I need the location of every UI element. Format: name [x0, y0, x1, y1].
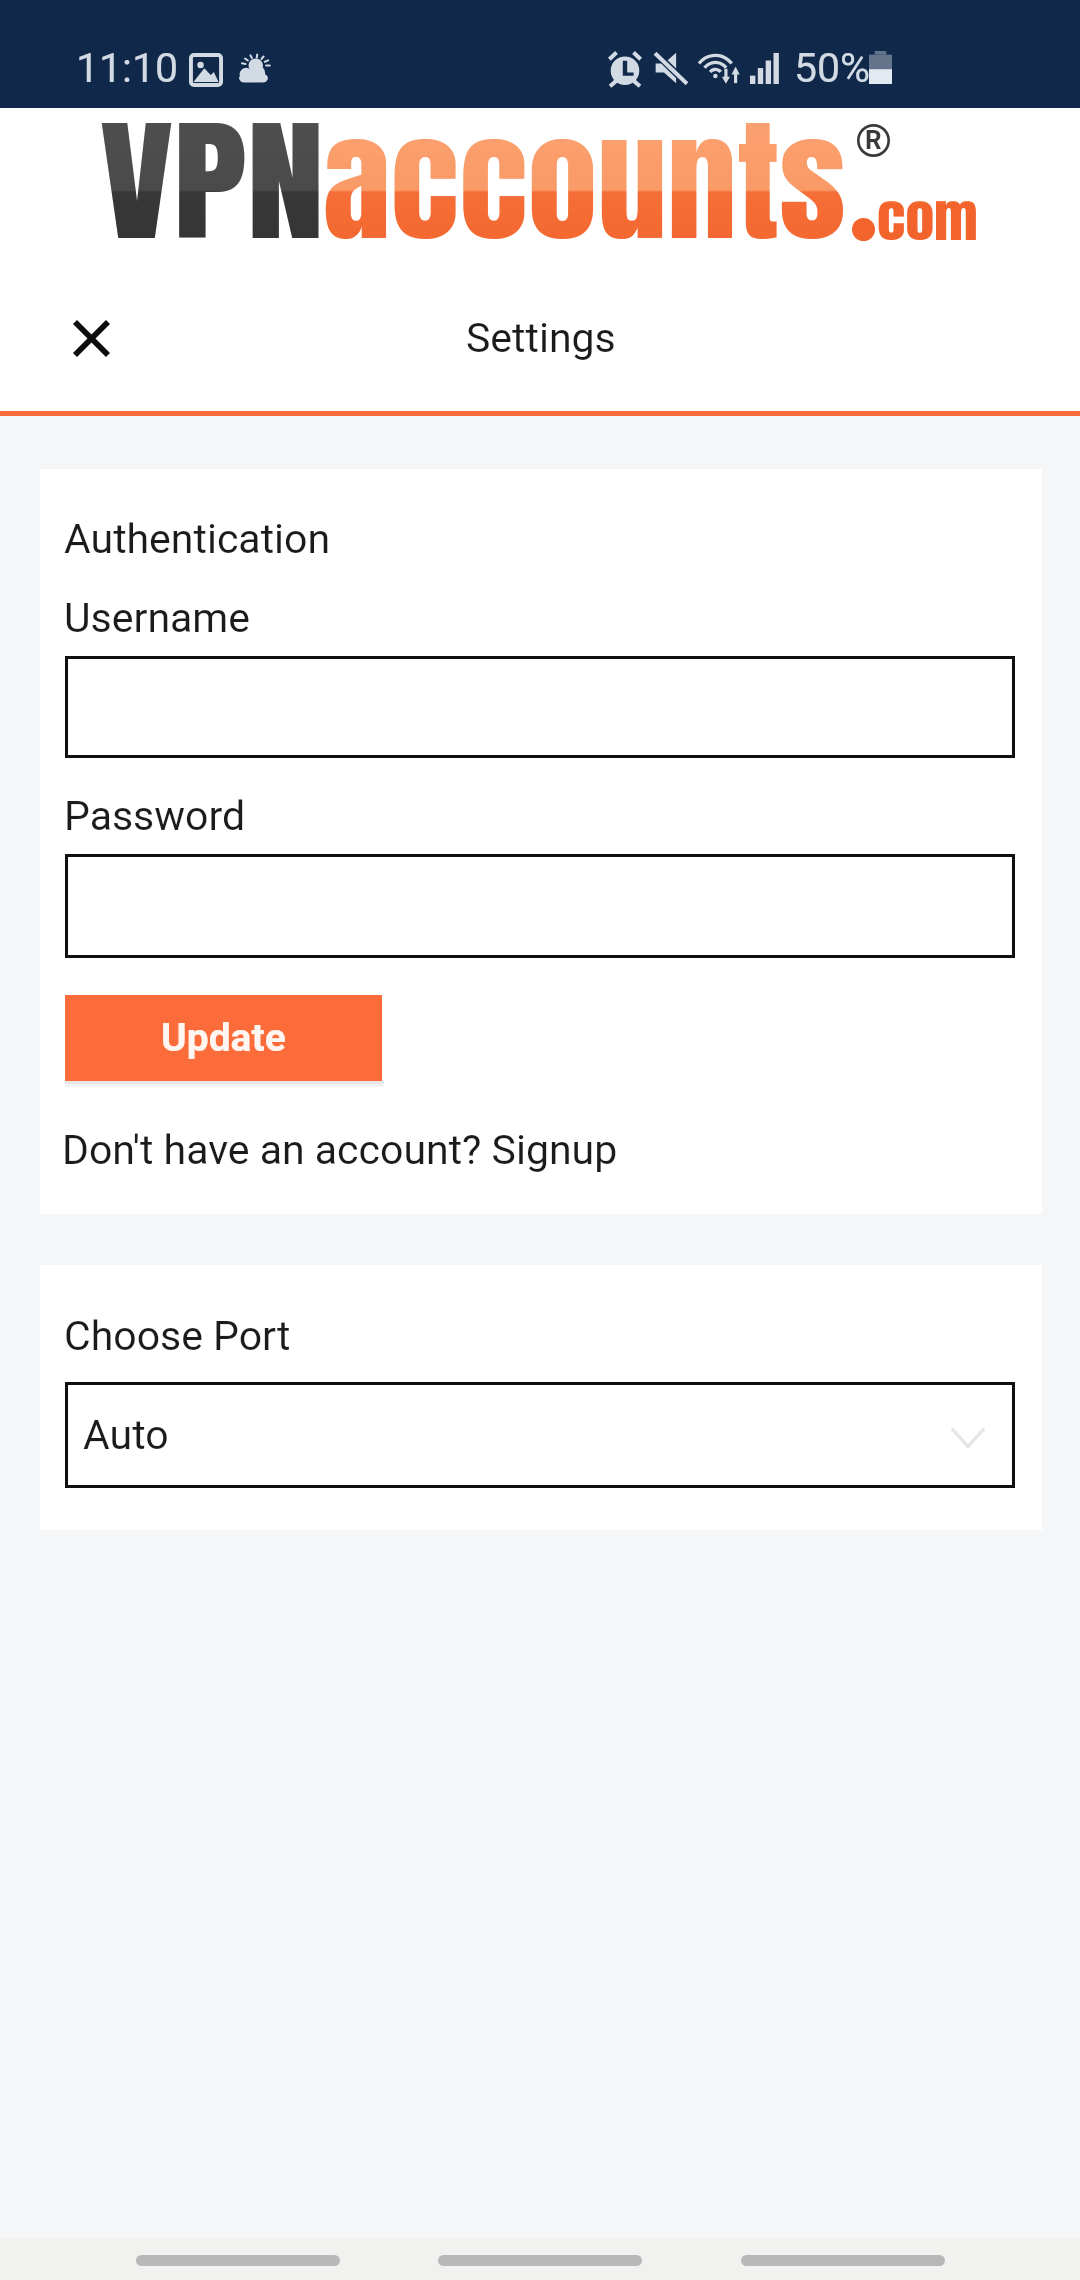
button[interactable]: Recent apps: [136, 2255, 340, 2266]
button[interactable]: Back: [741, 2255, 945, 2266]
staticText: Username: [64, 594, 251, 642]
staticText: VPN: [100, 80, 324, 282]
button[interactable]: Close: [44, 291, 138, 385]
staticText: 11:10: [76, 44, 179, 92]
button[interactable]: Auto: [65, 1382, 1015, 1488]
button[interactable]: Update: [65, 995, 382, 1081]
staticText: Settings: [466, 314, 616, 362]
button[interactable]: [65, 656, 1015, 758]
staticText: Authentication: [64, 515, 331, 563]
staticText: Update: [161, 1015, 286, 1061]
staticText: accounts: [323, 80, 847, 282]
button[interactable]: Home: [438, 2255, 642, 2266]
staticText: 50%: [794, 44, 871, 92]
staticText: com: [877, 178, 978, 258]
button[interactable]: Don't have an account? Signup: [62, 1126, 618, 1174]
staticText: R: [865, 125, 882, 155]
staticText: Password: [64, 792, 246, 840]
button[interactable]: [65, 854, 1015, 958]
staticText: Auto: [83, 1411, 169, 1459]
staticText: Choose Port: [64, 1312, 291, 1360]
